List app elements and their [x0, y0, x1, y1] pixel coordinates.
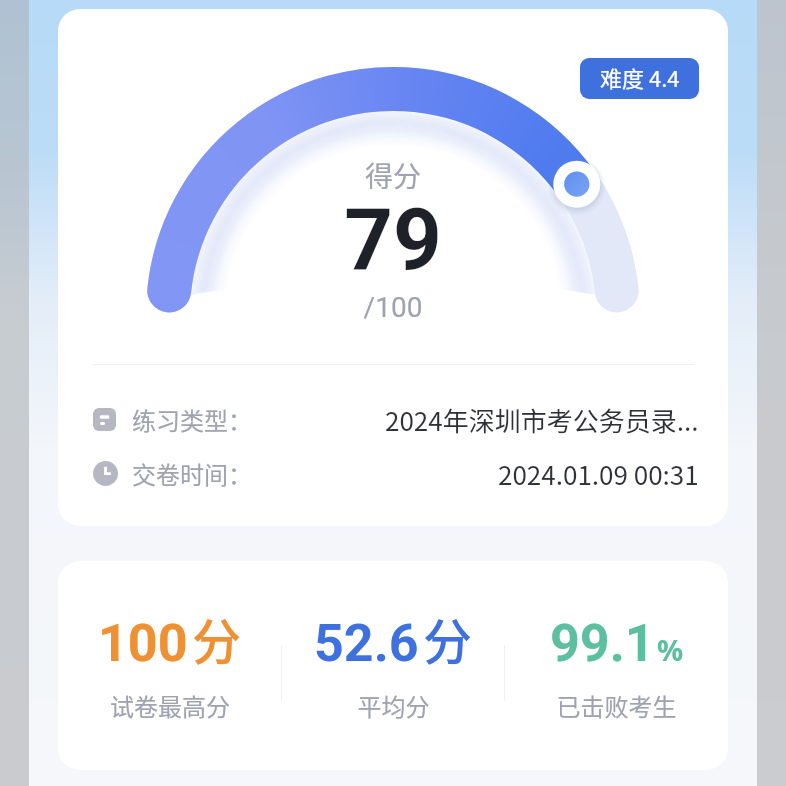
- staticText: 100: [98, 613, 188, 674]
- staticText: /100: [58, 291, 728, 324]
- staticText: 2024年深圳市考公务员录...: [385, 401, 699, 437]
- staticText: 分: [423, 603, 473, 674]
- button[interactable]: 100: [58, 561, 282, 770]
- button[interactable]: 99.1: [505, 561, 728, 770]
- staticText: 已击败考生: [505, 688, 728, 723]
- staticText: 交卷时间：: [132, 456, 252, 491]
- staticText: %: [657, 630, 684, 669]
- staticText: 99.1: [550, 613, 655, 674]
- staticText: 分: [192, 603, 242, 674]
- staticText: 难度 4.4: [600, 61, 680, 93]
- staticText: 52.6: [314, 613, 419, 674]
- staticText: 79: [58, 190, 728, 290]
- button[interactable]: 难度 4.4: [580, 58, 699, 99]
- staticText: 试卷最高分: [58, 688, 282, 723]
- staticText: 平均分: [282, 688, 505, 723]
- button[interactable]: 52.6: [282, 561, 505, 770]
- staticText: 2024.01.09 00:31: [498, 455, 699, 491]
- staticText: 练习类型：: [132, 402, 252, 437]
- staticText: 得分: [58, 155, 728, 196]
